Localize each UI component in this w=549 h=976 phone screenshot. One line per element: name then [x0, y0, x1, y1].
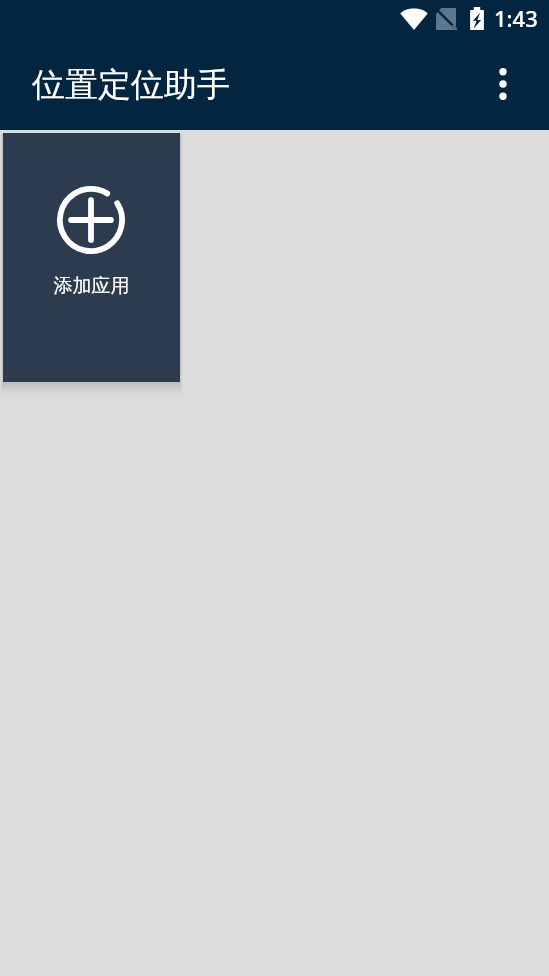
button[interactable]: 添加应用 [3, 133, 180, 382]
staticText: 添加应用 [51, 274, 132, 298]
staticText: 位置定位助手 [32, 64, 230, 106]
staticText: 1:43 [494, 3, 538, 29]
button[interactable]: More options [479, 60, 527, 108]
